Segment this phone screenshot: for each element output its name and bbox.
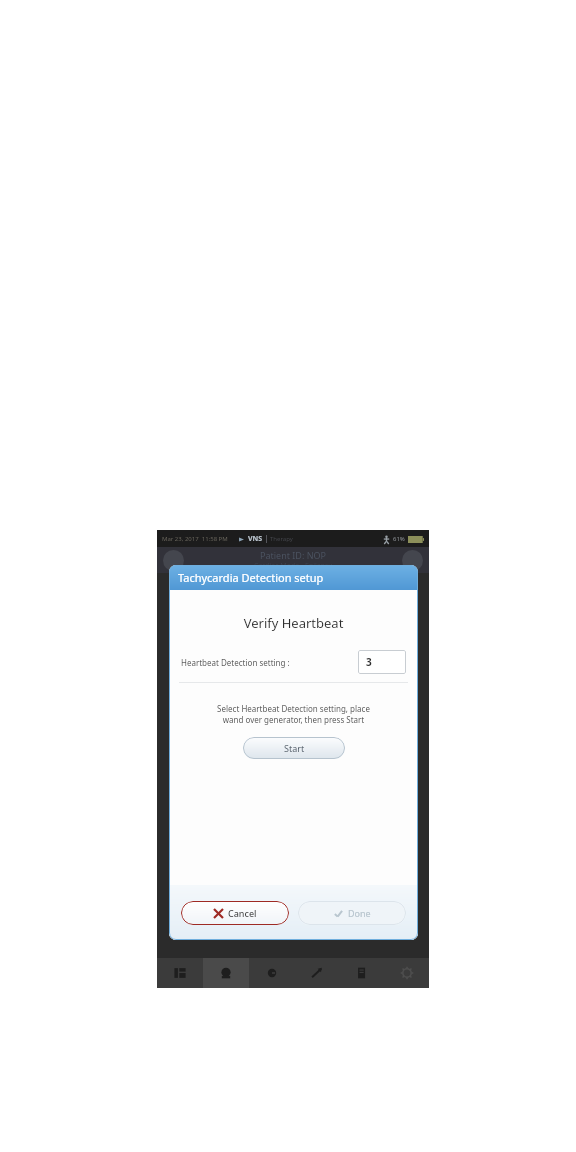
staticText: Therapy xyxy=(270,535,293,543)
staticText: Tachycardia Detection setup xyxy=(178,570,324,585)
staticText: Cardiac Mode - Epilepsy xyxy=(254,561,333,571)
staticText: Verify Heartbeat xyxy=(169,614,418,632)
staticText: Select Heartbeat Detection setting, plac… xyxy=(169,703,418,725)
button[interactable]: Done xyxy=(298,901,406,925)
button[interactable]: Dashboard xyxy=(157,958,203,988)
staticText: Cancel xyxy=(228,907,257,919)
staticText: Heartbeat Detection setting : xyxy=(181,657,290,668)
staticText: Patient ID: NOP xyxy=(260,549,326,561)
staticText: Done xyxy=(348,907,371,919)
button[interactable]: Cancel xyxy=(181,901,289,925)
button[interactable]: Therapy xyxy=(294,958,339,988)
staticText: VNS xyxy=(248,534,263,544)
staticText: 61% xyxy=(393,535,405,543)
button[interactable]: History xyxy=(249,958,294,988)
button[interactable]: Menu xyxy=(402,550,423,571)
button[interactable]: Back xyxy=(163,550,184,571)
button[interactable]: 3 xyxy=(358,650,406,674)
button[interactable]: Device xyxy=(203,958,249,988)
staticText: Start xyxy=(284,742,305,754)
staticText: Mar 23, 2017 11:58 PM xyxy=(162,535,228,543)
button[interactable]: Start xyxy=(243,737,345,759)
button[interactable]: Reports xyxy=(339,958,384,988)
staticText: 3 xyxy=(366,655,372,669)
button[interactable]: Settings xyxy=(384,958,429,988)
